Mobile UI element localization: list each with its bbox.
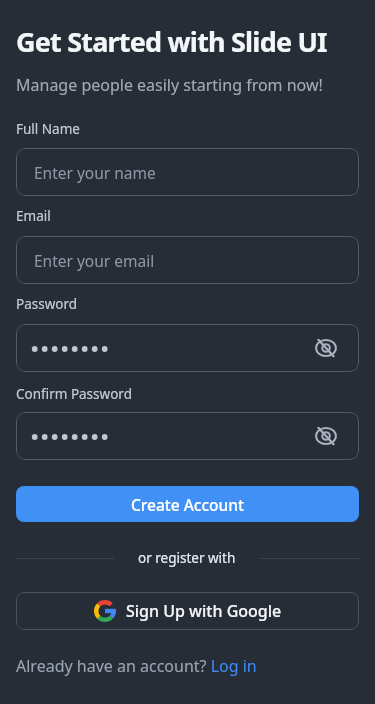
staticText: Enter your name <box>34 162 156 183</box>
staticText: Password <box>16 295 78 313</box>
staticText: Get Started with Slide UI <box>16 23 327 60</box>
button[interactable] <box>16 324 359 372</box>
staticText: Enter your email <box>34 250 155 271</box>
button[interactable]: Enter your email <box>16 236 359 284</box>
staticText: Confirm Password <box>16 385 132 403</box>
staticText: Sign Up with Google <box>126 600 282 622</box>
button[interactable] <box>16 412 359 460</box>
staticText: Create Account <box>131 494 244 515</box>
button[interactable]: Sign Up with Google <box>16 592 359 630</box>
staticText: Email <box>16 207 51 225</box>
staticText: Full Name <box>16 120 80 138</box>
staticText: Manage people easily starting from now! <box>16 74 323 96</box>
button[interactable]: Create Account <box>16 486 359 522</box>
staticText: or register with <box>138 549 236 567</box>
button[interactable]: Enter your name <box>16 148 359 196</box>
button[interactable]: Already have an account? Log in <box>16 655 257 677</box>
